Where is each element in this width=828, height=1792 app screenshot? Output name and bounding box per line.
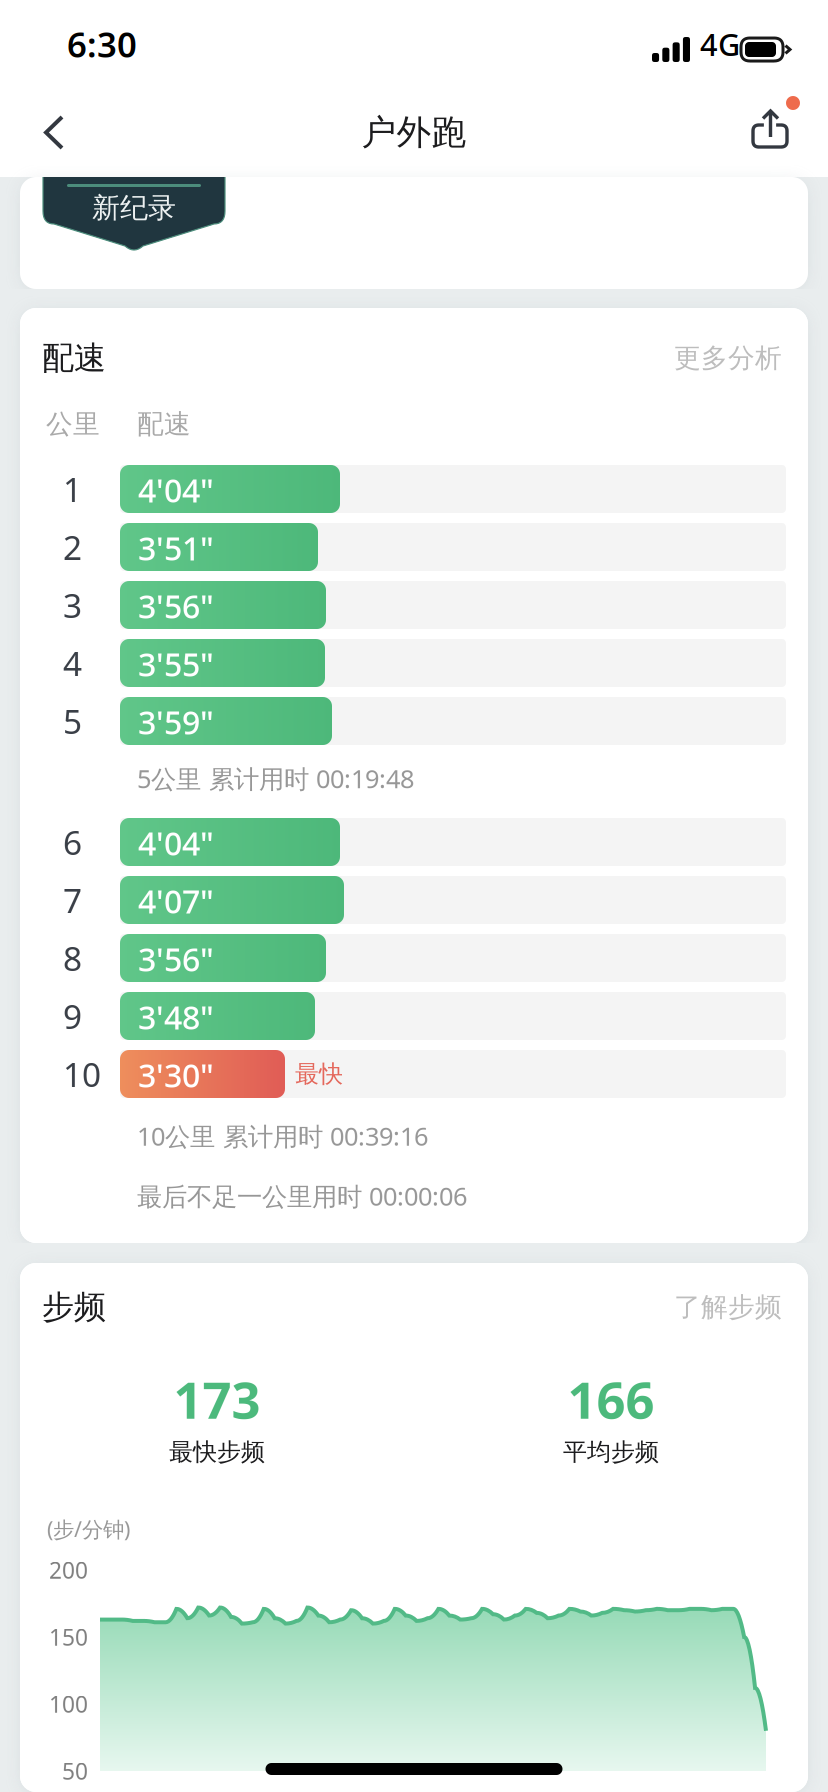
staticText: 4G bbox=[700, 24, 740, 64]
staticText: 公里 bbox=[46, 408, 100, 440]
button[interactable]: 9 bbox=[20, 992, 808, 1050]
staticText: 4'07" bbox=[138, 880, 214, 922]
button[interactable]: 1 bbox=[20, 465, 808, 523]
staticText: 10 bbox=[63, 1052, 101, 1096]
button[interactable]: 2 bbox=[20, 523, 808, 581]
staticText: 5 bbox=[63, 699, 82, 743]
staticText: 步频 bbox=[42, 1287, 106, 1327]
staticText: 配速 bbox=[42, 338, 106, 378]
staticText: 100 bbox=[49, 1689, 88, 1719]
staticText: 最快 bbox=[295, 1059, 343, 1089]
staticText: 3 bbox=[63, 583, 82, 627]
button[interactable]: 8 bbox=[20, 934, 808, 992]
staticText: (步/分钟) bbox=[47, 1515, 130, 1543]
button[interactable]: 更多分析 bbox=[674, 308, 782, 408]
staticText: 2 bbox=[63, 525, 82, 569]
staticText: 6:30 bbox=[67, 21, 137, 67]
staticText: 平均步频 bbox=[563, 1437, 659, 1467]
button[interactable]: Back bbox=[0, 88, 78, 177]
staticText: 5公里 累计用时 00:19:48 bbox=[137, 762, 414, 795]
staticText: 4 bbox=[63, 641, 82, 685]
staticText: 3'55" bbox=[138, 643, 214, 685]
staticText: 1 bbox=[63, 467, 82, 511]
staticText: 3'56" bbox=[138, 585, 214, 627]
staticText: 7 bbox=[63, 878, 82, 922]
staticText: 3'59" bbox=[138, 701, 214, 743]
staticText: 9 bbox=[63, 994, 82, 1038]
button[interactable]: 4 bbox=[20, 639, 808, 697]
button[interactable]: 了解步频 bbox=[674, 1263, 782, 1351]
staticText: 更多分析 bbox=[674, 342, 782, 374]
button[interactable]: 5 bbox=[20, 697, 808, 755]
button[interactable]: 7 bbox=[20, 876, 808, 934]
staticText: 3'30" bbox=[138, 1054, 214, 1096]
button[interactable]: 3 bbox=[20, 581, 808, 639]
staticText: 户外跑 bbox=[361, 111, 466, 154]
button[interactable]: 10 bbox=[20, 1050, 808, 1108]
staticText: 50 bbox=[62, 1756, 88, 1786]
staticText: 173 bbox=[173, 1365, 260, 1433]
staticText: 3'51" bbox=[138, 527, 214, 569]
staticText: 4'04" bbox=[138, 822, 214, 864]
staticText: 最快步频 bbox=[169, 1437, 265, 1467]
button[interactable]: 6 bbox=[20, 818, 808, 876]
staticText: 8 bbox=[63, 936, 82, 980]
button[interactable]: Share bbox=[742, 88, 828, 177]
staticText: 10公里 累计用时 00:39:16 bbox=[137, 1119, 428, 1153]
staticText: 200 bbox=[49, 1555, 88, 1585]
staticText: 新纪录 bbox=[92, 191, 176, 225]
staticText: 166 bbox=[567, 1365, 654, 1433]
staticText: 3'56" bbox=[138, 938, 214, 980]
staticText: 4'04" bbox=[138, 469, 214, 511]
staticText: 150 bbox=[49, 1622, 88, 1652]
staticText: 3'48" bbox=[138, 996, 214, 1038]
staticText: 6 bbox=[63, 820, 82, 864]
staticText: 配速 bbox=[137, 408, 191, 440]
staticText: 了解步频 bbox=[674, 1291, 782, 1323]
staticText: 最后不足一公里用时 00:00:06 bbox=[137, 1179, 467, 1213]
